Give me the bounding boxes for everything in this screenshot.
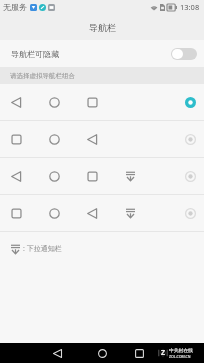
staticText: : 下拉通知栏	[23, 244, 62, 254]
button[interactable]	[0, 121, 204, 158]
staticText: 13:08	[180, 2, 200, 12]
button[interactable]	[0, 195, 204, 232]
staticText: ZOL.COM.CN	[169, 354, 191, 359]
button[interactable]: 导航栏可隐藏	[0, 40, 204, 67]
button[interactable]: Recents	[129, 343, 149, 363]
button[interactable]: Back	[47, 343, 67, 363]
staticText: 导航栏可隐藏	[11, 49, 59, 59]
button[interactable]	[0, 158, 204, 195]
staticText: 无服务	[3, 2, 27, 12]
staticText: 导航栏	[89, 22, 116, 33]
staticText: 中关村在线	[169, 347, 193, 353]
staticText: Z	[161, 348, 166, 358]
button[interactable]: Home	[92, 343, 112, 363]
staticText: 请选择虚拟导航栏组合	[10, 72, 75, 80]
button[interactable]	[0, 84, 204, 121]
